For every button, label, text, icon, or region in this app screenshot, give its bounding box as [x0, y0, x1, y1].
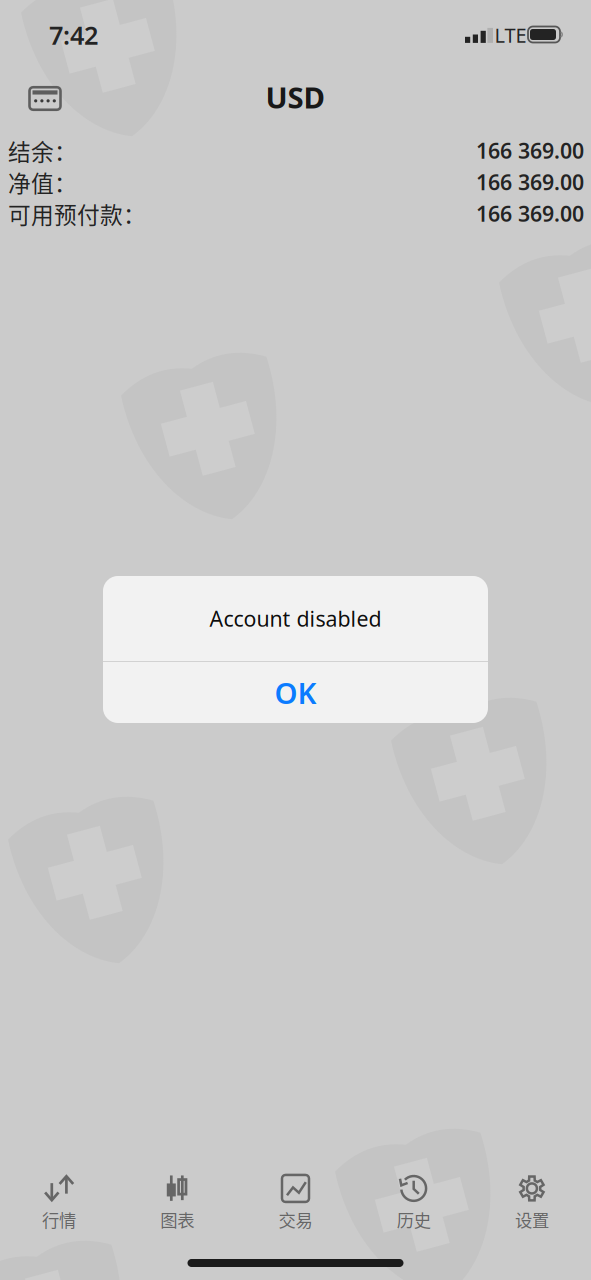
- staticText: 7:42: [49, 18, 98, 52]
- staticText: LTE: [494, 22, 526, 48]
- staticText: OK: [274, 673, 316, 712]
- staticText: 历史: [397, 1207, 431, 1232]
- staticText: 交易: [278, 1207, 312, 1232]
- staticText: 图表: [160, 1207, 194, 1232]
- button[interactable]: 交易: [236, 1169, 355, 1231]
- staticText: 166 369.00: [476, 136, 584, 165]
- button[interactable]: 设置: [473, 1169, 591, 1231]
- staticText: 结余：: [8, 134, 77, 167]
- staticText: 166 369.00: [476, 168, 584, 196]
- staticText: 可用预付款：: [8, 197, 146, 230]
- staticText: 设置: [515, 1207, 549, 1232]
- button[interactable]: 历史: [355, 1169, 473, 1231]
- staticText: 166 369.00: [476, 199, 584, 228]
- staticText: Account disabled: [209, 604, 381, 633]
- staticText: 行情: [42, 1207, 76, 1232]
- staticText: 净值：: [8, 166, 77, 198]
- button[interactable]: Accounts: [14, 72, 76, 124]
- button[interactable]: 行情: [0, 1169, 118, 1231]
- button[interactable]: 图表: [118, 1169, 236, 1231]
- button[interactable]: OK: [103, 662, 488, 723]
- staticText: USD: [265, 77, 324, 116]
